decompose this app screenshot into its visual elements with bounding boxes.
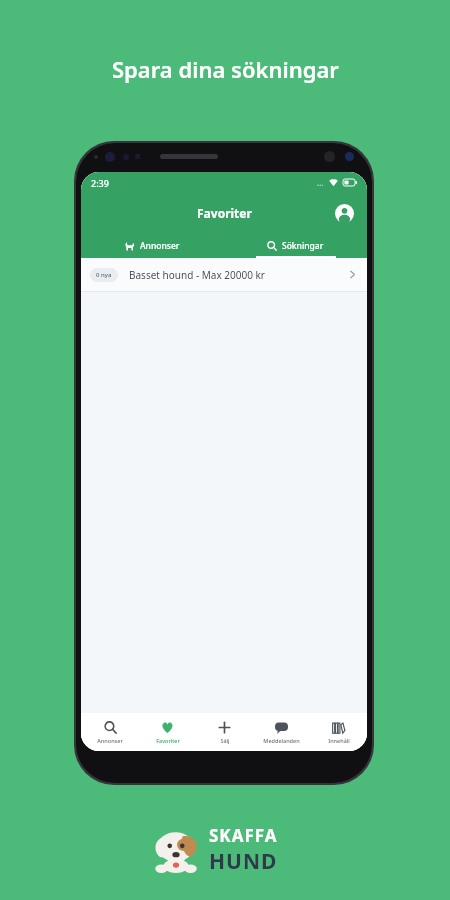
staticText: Sökningar (282, 240, 324, 252)
button[interactable]: Profil (331, 200, 357, 226)
button[interactable]: Meddelanden (253, 713, 310, 751)
staticText: Spara dina sökningar (112, 54, 339, 84)
staticText: Annonser (140, 240, 180, 252)
button[interactable]: Annonser (81, 233, 224, 258)
staticText: Annonser (97, 737, 123, 744)
staticText: Innehåll (328, 737, 350, 744)
staticText: Basset hound - Max 20000 kr (129, 268, 265, 282)
staticText: 0 nya (96, 271, 112, 279)
staticText: ... (317, 177, 324, 188)
button[interactable]: Sälj (196, 713, 253, 751)
button[interactable]: Annonser (81, 713, 139, 751)
staticText: SKAFFA (209, 824, 278, 847)
staticText: Meddelanden (263, 737, 300, 744)
button[interactable]: Innehåll (310, 713, 367, 751)
staticText: Favoriter (156, 737, 180, 744)
button[interactable]: 0 nya (81, 258, 367, 291)
staticText: HUND (209, 847, 278, 876)
staticText: 2:39 (91, 177, 109, 189)
button[interactable]: Sökningar (224, 233, 367, 258)
staticText: Sälj (220, 737, 230, 744)
button[interactable]: Favoriter (139, 713, 196, 751)
staticText: Favoriter (197, 205, 252, 221)
